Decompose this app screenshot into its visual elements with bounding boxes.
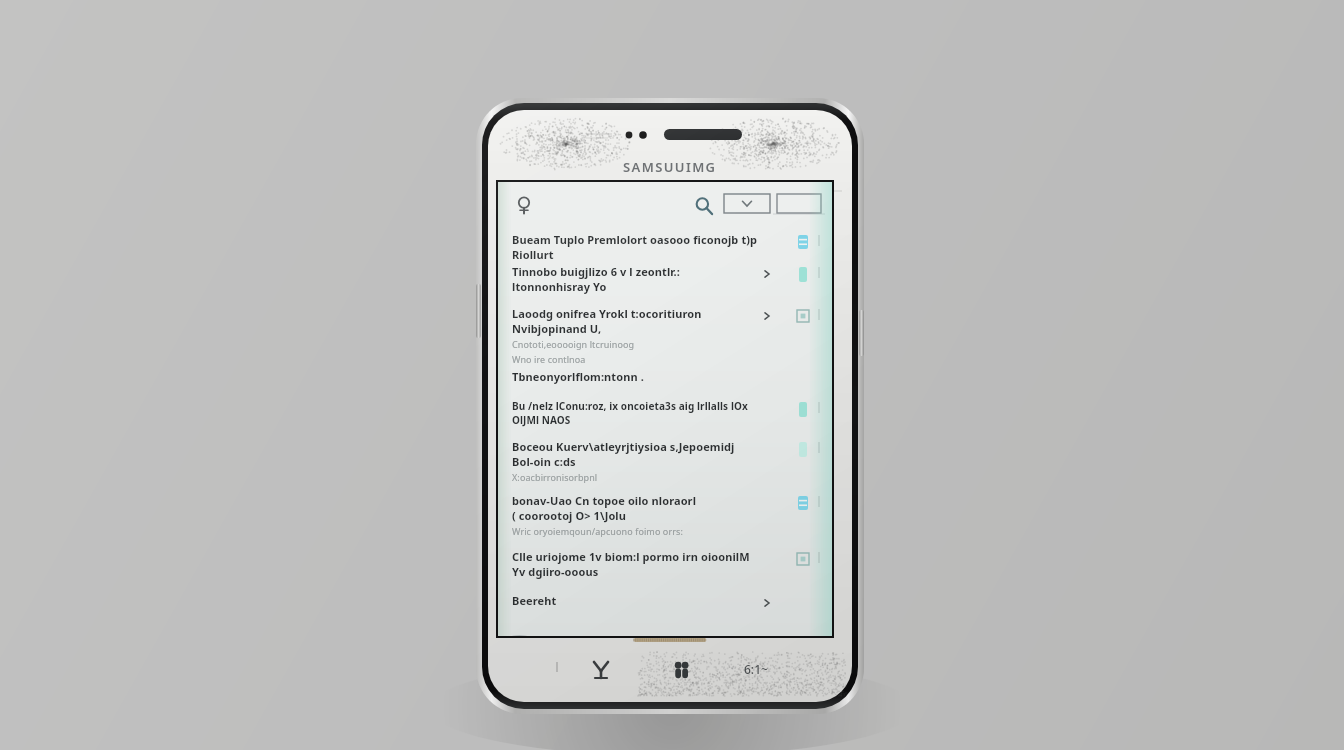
- staticText: Cnototi,eooooign ltcruinoog: [512, 338, 635, 350]
- button[interactable]: Clle uriojome 1v biom:l pormo irn oiooni…: [512, 549, 824, 579]
- button[interactable]: Tinnobo buigjlizo 6 v l zeontlr.: ltonno…: [512, 264, 824, 294]
- button[interactable]: Account: [512, 192, 538, 218]
- button[interactable]: Beereht: [512, 593, 824, 613]
- button[interactable]: bonav-Uao Cn topoe oilo nloraorl ( cooro…: [512, 493, 824, 537]
- button[interactable]: Search: [690, 192, 716, 218]
- staticText: Beereht: [512, 593, 557, 608]
- staticText: 6:1~: [744, 661, 768, 677]
- button[interactable]: Back: [584, 656, 618, 684]
- button[interactable]: More options: [777, 194, 821, 213]
- staticText: bonav-Uao Cn topoe oilo nloraorl ( cooro…: [512, 493, 758, 523]
- staticText: Bueam Tuplo Premlolort oasooo ficonojb t…: [512, 232, 758, 262]
- button[interactable]: Bu /nelz lConu:roz, ix oncoieta3s aig lr…: [512, 399, 824, 427]
- staticText: Clle uriojome 1v biom:l pormo irn oiooni…: [512, 549, 758, 579]
- button[interactable]: Filter: [724, 194, 770, 213]
- button[interactable]: Power: [859, 310, 864, 356]
- button[interactable]: Tbneonyorlflom:ntonn .: [512, 369, 824, 389]
- staticText: Wno ire contlnoa: [512, 353, 586, 365]
- button[interactable]: Volume: [476, 284, 481, 338]
- button[interactable]: Laoodg onifrea Yrokl t:ocoritiuron Nvibj…: [512, 306, 824, 365]
- staticText: Tbneonyorlflom:ntonn .: [512, 369, 644, 384]
- staticText: Boceou Kuerv\atleyrjtiysioa s,Jepoemidj …: [512, 439, 758, 469]
- staticText: SAMSUUIMG: [623, 158, 717, 176]
- staticText: Laoodg onifrea Yrokl t:ocoritiuron Nvibj…: [512, 306, 758, 336]
- button[interactable]: Contacts: [664, 656, 700, 684]
- staticText: Bu /nelz lConu:roz, ix oncoieta3s aig lr…: [512, 399, 758, 427]
- button[interactable]: Menu: [744, 656, 798, 682]
- staticText: Tinnobo buigjlizo 6 v l zeontlr.: ltonno…: [512, 264, 758, 294]
- button[interactable]: Boceou Kuerv\atleyrjtiysioa s,Jepoemidj …: [512, 439, 824, 483]
- button[interactable]: Bueam Tuplo Premlolort oasooo ficonojb t…: [512, 232, 824, 262]
- staticText: Wric oryoiemqoun/apcuono foimo orrs:: [512, 525, 683, 537]
- button[interactable]: Recents: [550, 660, 564, 676]
- staticText: X:oacbirronisorbpnl: [512, 471, 598, 483]
